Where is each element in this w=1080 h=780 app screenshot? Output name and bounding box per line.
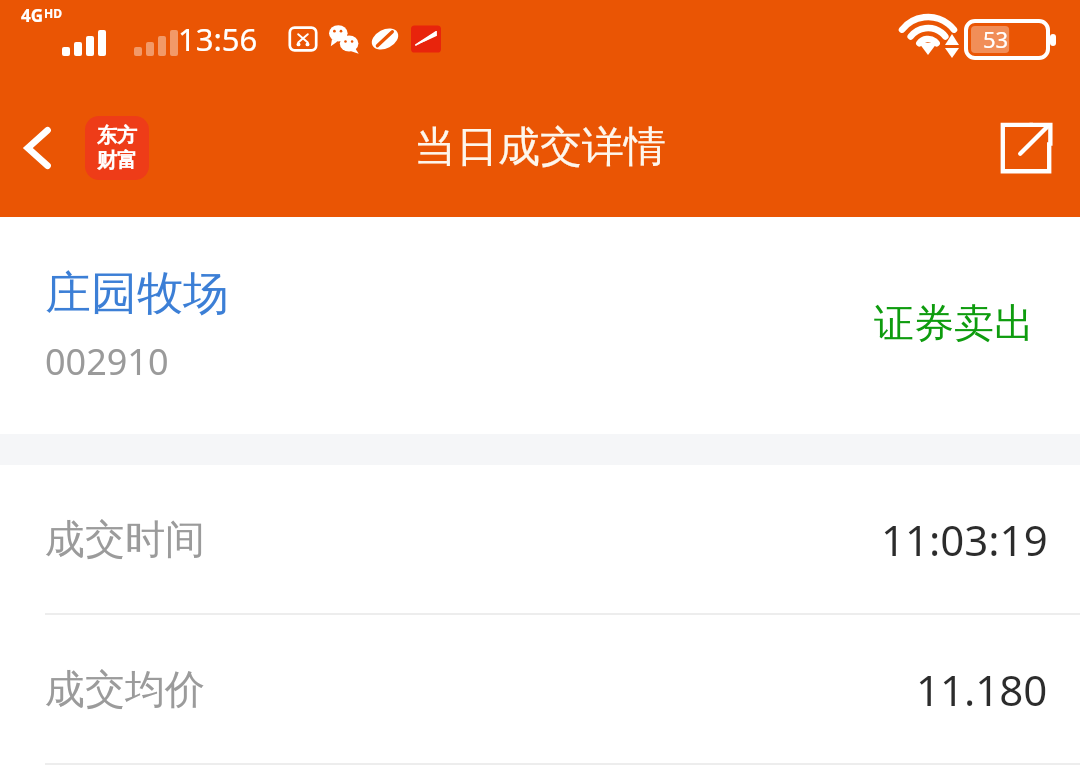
staticText: 财富 <box>97 148 137 173</box>
button[interactable]: 东方财富 <box>85 116 149 180</box>
staticText: 11:03:19 <box>881 511 1048 568</box>
staticText: 13:56 <box>178 18 258 60</box>
button[interactable]: 成交均价 <box>0 615 1080 763</box>
staticText: 成交时间 <box>45 514 205 564</box>
button[interactable]: 庄园牧场 <box>0 217 1080 434</box>
staticText: 53 <box>983 24 1009 54</box>
staticText: 证券卖出 <box>874 298 1034 348</box>
staticText: 002910 <box>45 337 169 386</box>
button[interactable]: 返回 <box>6 115 72 181</box>
staticText: 当日成交详情 <box>414 121 666 174</box>
staticText: HD <box>44 5 62 21</box>
staticText: 11.180 <box>916 661 1048 718</box>
staticText: 东方 <box>97 123 137 148</box>
button[interactable]: 分享 <box>988 110 1064 186</box>
staticText: 庄园牧场 <box>45 265 229 323</box>
staticText: 4G <box>21 4 44 27</box>
button[interactable]: 成交时间 <box>0 465 1080 613</box>
staticText: 成交均价 <box>45 664 205 714</box>
